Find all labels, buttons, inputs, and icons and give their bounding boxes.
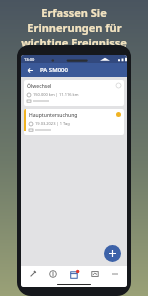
staticText: Erfassen Sie [41, 5, 107, 20]
button[interactable]: Hauptuntersuchung [24, 109, 124, 135]
staticText: 19.03.2023 | 1 Tag [35, 121, 70, 126]
button[interactable]: Statistics [86, 266, 104, 282]
staticText: wichtige Ereignisse [21, 35, 127, 50]
button[interactable]: Add [104, 245, 121, 262]
staticText: 150.000 km | 11.116 km [33, 92, 79, 97]
staticText: Ölwechsel [27, 83, 52, 90]
button[interactable]: More [106, 266, 124, 282]
button[interactable]: Costs [44, 266, 62, 282]
button[interactable]: Back [25, 65, 35, 75]
staticText: 13:00 [24, 57, 35, 62]
button[interactable]: Fuel [24, 266, 42, 282]
button[interactable]: Reminders [65, 266, 83, 282]
staticText: Erinnerungen für [27, 20, 122, 35]
staticText: PA SM000 [40, 66, 68, 74]
button[interactable]: Ölwechsel [24, 80, 124, 106]
staticText: Hauptuntersuchung [29, 112, 78, 119]
